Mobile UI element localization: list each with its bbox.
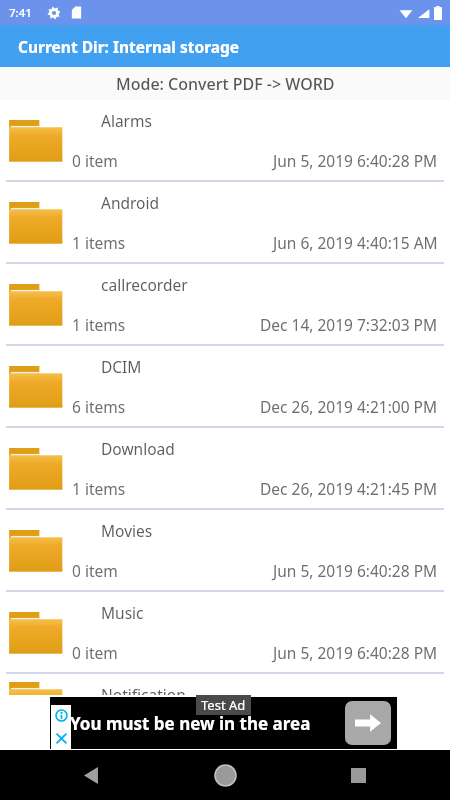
staticText: DCIM bbox=[101, 356, 142, 377]
staticText: 1 items bbox=[72, 232, 126, 253]
button[interactable]: Android bbox=[0, 182, 450, 262]
staticText: 0 item bbox=[72, 560, 118, 581]
staticText: Movies bbox=[101, 520, 153, 541]
staticText: Jun 5, 2019 6:40:28 PM bbox=[273, 642, 438, 663]
staticText: Notification bbox=[101, 684, 186, 705]
button[interactable]: Recent apps bbox=[338, 755, 378, 795]
staticText: Android bbox=[101, 192, 160, 213]
button[interactable]: Current Dir: Internal storage bbox=[0, 25, 450, 67]
button[interactable]: Alarms bbox=[0, 100, 450, 180]
staticText: You must be new in the area bbox=[70, 712, 311, 735]
staticText: 1 items bbox=[72, 478, 126, 499]
staticText: Current Dir: Internal storage bbox=[18, 36, 240, 57]
staticText: Jun 5, 2019 6:40:28 PM bbox=[273, 560, 438, 581]
button[interactable]: Movies bbox=[0, 510, 450, 590]
staticText: Mode: Convert PDF -> WORD bbox=[116, 73, 335, 95]
staticText: 0 item bbox=[72, 642, 118, 663]
button[interactable]: Back bbox=[72, 755, 112, 795]
staticText: 0 item bbox=[72, 714, 118, 730]
staticText: Jun 6, 2019 4:40:15 AM bbox=[273, 232, 438, 253]
button[interactable]: Ad info bbox=[55, 709, 68, 722]
button[interactable]: DCIM bbox=[0, 346, 450, 426]
button[interactable]: Download bbox=[0, 428, 450, 508]
button[interactable]: Music bbox=[0, 592, 450, 672]
staticText: Test Ad bbox=[201, 696, 246, 714]
staticText: Music bbox=[101, 602, 144, 623]
staticText: Alarms bbox=[101, 110, 152, 131]
staticText: 6 items bbox=[72, 396, 126, 417]
staticText: Dec 14, 2019 7:32:03 PM bbox=[260, 314, 438, 335]
staticText: 1 items bbox=[72, 314, 126, 335]
staticText: Download bbox=[101, 438, 175, 459]
button[interactable]: Open ad bbox=[345, 701, 391, 745]
staticText: Dec 26, 2019 4:21:00 PM bbox=[260, 396, 438, 417]
button[interactable]: Close ad bbox=[55, 732, 68, 745]
staticText: 7:41 bbox=[9, 5, 32, 21]
staticText: Jun 5, 2019 6:40:28 PM bbox=[273, 150, 438, 171]
staticText: Jun 5, 2019 6:40:28 PM bbox=[273, 714, 438, 730]
staticText: 0 item bbox=[72, 150, 118, 171]
button[interactable]: You must be new in the area bbox=[50, 697, 397, 749]
staticText: Dec 26, 2019 4:21:45 PM bbox=[260, 478, 438, 499]
staticText: callrecorder bbox=[101, 274, 188, 295]
button[interactable]: Home bbox=[205, 755, 245, 795]
button[interactable]: callrecorder bbox=[0, 264, 450, 344]
button[interactable]: Notification bbox=[0, 674, 450, 730]
